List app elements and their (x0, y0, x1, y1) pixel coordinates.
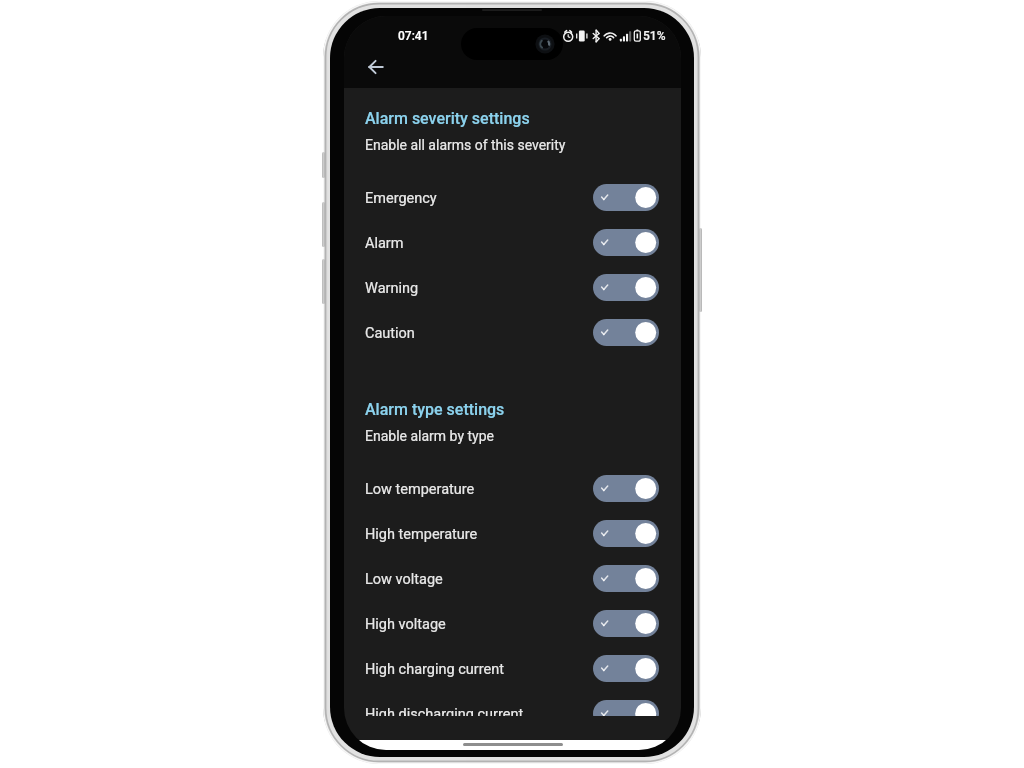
staticText: Enable all alarms of this severity (365, 137, 566, 153)
staticText: Emergency (365, 190, 437, 207)
staticText: Warning (365, 280, 419, 297)
button[interactable]: Low temperature (344, 466, 681, 511)
button[interactable]: Low voltage (344, 556, 681, 601)
staticText: Alarm (365, 235, 404, 252)
staticText: 51% (643, 29, 666, 43)
button[interactable]: Emergency (344, 175, 681, 220)
staticText: Enable alarm by type (365, 428, 494, 444)
button[interactable]: High charging current (344, 646, 681, 691)
button[interactable]: High temperature (344, 511, 681, 556)
staticText: High temperature (365, 526, 478, 543)
button[interactable]: Warning (344, 265, 681, 310)
staticText: Low temperature (365, 481, 475, 498)
button[interactable]: Alarm (344, 220, 681, 265)
button[interactable]: High voltage (344, 601, 681, 646)
button[interactable]: Caution (344, 310, 681, 355)
staticText: High voltage (365, 616, 446, 633)
staticText: Alarm severity settings (365, 109, 530, 128)
staticText: Caution (365, 325, 415, 342)
staticText: Low voltage (365, 571, 443, 588)
staticText: High charging current (365, 661, 504, 678)
staticText: 07:41 (398, 29, 429, 43)
button[interactable]: Back (354, 45, 398, 89)
button[interactable]: High discharging current (344, 691, 681, 716)
staticText: Alarm type settings (365, 400, 505, 419)
staticText: High discharging current (365, 706, 524, 716)
